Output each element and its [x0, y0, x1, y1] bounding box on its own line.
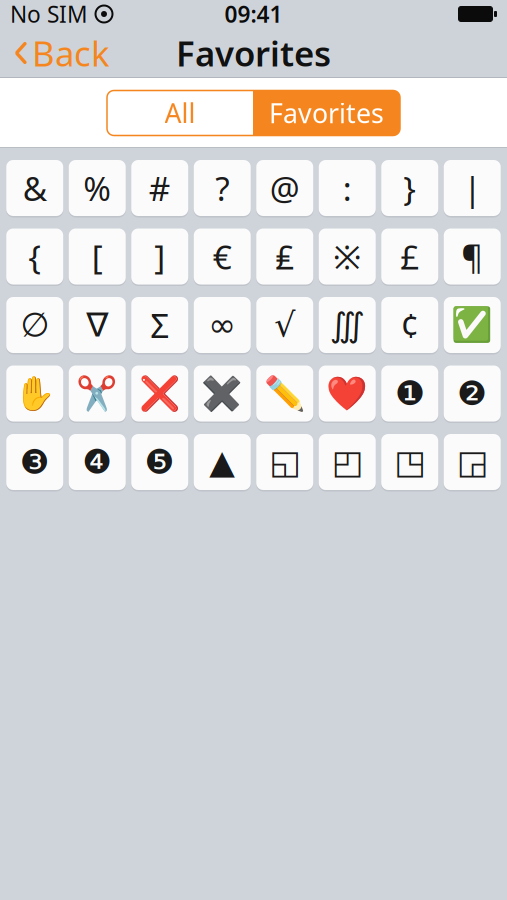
- staticText: All: [164, 95, 195, 131]
- button[interactable]: ❶: [381, 364, 438, 422]
- button[interactable]: Σ: [131, 296, 188, 354]
- staticText: &: [23, 166, 47, 210]
- button[interactable]: ▲: [194, 433, 251, 491]
- staticText: Favorites: [269, 95, 384, 131]
- staticText: ❺: [145, 443, 175, 481]
- staticText: ?: [215, 166, 229, 210]
- staticText: :: [343, 166, 352, 210]
- staticText: ₤: [275, 234, 294, 279]
- staticText: ◱: [269, 443, 300, 481]
- button[interactable]: £: [381, 227, 438, 285]
- button[interactable]: ∅: [6, 296, 63, 354]
- button[interactable]: €: [194, 227, 251, 285]
- staticText: #: [149, 166, 171, 210]
- button[interactable]: ]: [131, 227, 188, 285]
- staticText: ❹: [82, 443, 112, 481]
- button[interactable]: ※: [319, 227, 376, 285]
- staticText: ◲: [457, 443, 488, 481]
- staticText: @: [270, 166, 300, 210]
- staticText: ]: [154, 234, 165, 279]
- staticText: Back: [32, 30, 110, 76]
- staticText: %: [83, 166, 111, 210]
- staticText: ∭: [330, 306, 365, 344]
- button[interactable]: ◱: [256, 433, 313, 491]
- button[interactable]: ✅: [444, 296, 501, 354]
- staticText: No SIM: [10, 0, 88, 29]
- button[interactable]: All: [107, 90, 253, 135]
- button[interactable]: &: [6, 159, 63, 217]
- staticText: ▲: [209, 443, 235, 481]
- staticText: ✅: [451, 306, 493, 344]
- button[interactable]: ◳: [381, 433, 438, 491]
- staticText: ◰: [332, 443, 363, 481]
- staticText: ❷: [457, 375, 487, 412]
- staticText: ❤️: [326, 374, 368, 413]
- button[interactable]: #: [131, 159, 188, 217]
- staticText: ❶: [395, 375, 425, 412]
- staticText: ✖️: [201, 374, 243, 413]
- button[interactable]: %: [69, 159, 126, 217]
- button[interactable]: ❺: [131, 433, 188, 491]
- staticText: √: [274, 306, 295, 344]
- button[interactable]: Back: [0, 24, 122, 82]
- staticText: 09:41: [224, 0, 282, 29]
- button[interactable]: ✖️: [194, 364, 251, 422]
- staticText: ∅: [20, 306, 49, 344]
- button[interactable]: Favorites: [253, 90, 400, 135]
- button[interactable]: ∞: [194, 296, 251, 354]
- button[interactable]: |: [444, 159, 501, 217]
- button[interactable]: ❤️: [319, 364, 376, 422]
- staticText: ◳: [394, 443, 425, 481]
- button[interactable]: ◰: [319, 433, 376, 491]
- staticText: ¢: [400, 303, 419, 347]
- staticText: |: [463, 166, 481, 210]
- staticText: ∇: [86, 306, 108, 344]
- button[interactable]: ❹: [69, 433, 126, 491]
- button[interactable]: ❸: [6, 433, 63, 491]
- staticText: ✂️: [76, 374, 118, 413]
- staticText: ※: [333, 234, 361, 279]
- button[interactable]: ?: [194, 159, 251, 217]
- button[interactable]: [: [69, 227, 126, 285]
- staticText: ∞: [208, 306, 236, 344]
- staticText: {: [28, 234, 41, 279]
- button[interactable]: ✏️: [256, 364, 313, 422]
- button[interactable]: :: [319, 159, 376, 217]
- button[interactable]: ₤: [256, 227, 313, 285]
- button[interactable]: ∭: [319, 296, 376, 354]
- staticText: £: [400, 234, 419, 279]
- button[interactable]: ❌: [131, 364, 188, 422]
- button[interactable]: ◲: [444, 433, 501, 491]
- button[interactable]: ¢: [381, 296, 438, 354]
- staticText: ❌: [139, 374, 181, 413]
- staticText: Favorites: [176, 30, 331, 76]
- button[interactable]: ∇: [69, 296, 126, 354]
- button[interactable]: ❷: [444, 364, 501, 422]
- staticText: [: [92, 234, 103, 279]
- staticText: €: [213, 234, 232, 279]
- button[interactable]: ¶: [444, 227, 501, 285]
- button[interactable]: {: [6, 227, 63, 285]
- button[interactable]: √: [256, 296, 313, 354]
- staticText: ❸: [20, 443, 50, 481]
- staticText: }: [403, 166, 416, 210]
- button[interactable]: @: [256, 159, 313, 217]
- staticText: ✏️: [264, 374, 306, 413]
- button[interactable]: ✂️: [69, 364, 126, 422]
- staticText: Σ: [150, 303, 169, 347]
- staticText: ✋: [14, 374, 56, 413]
- button[interactable]: ✋: [6, 364, 63, 422]
- button[interactable]: }: [381, 159, 438, 217]
- staticText: ¶: [461, 234, 483, 279]
